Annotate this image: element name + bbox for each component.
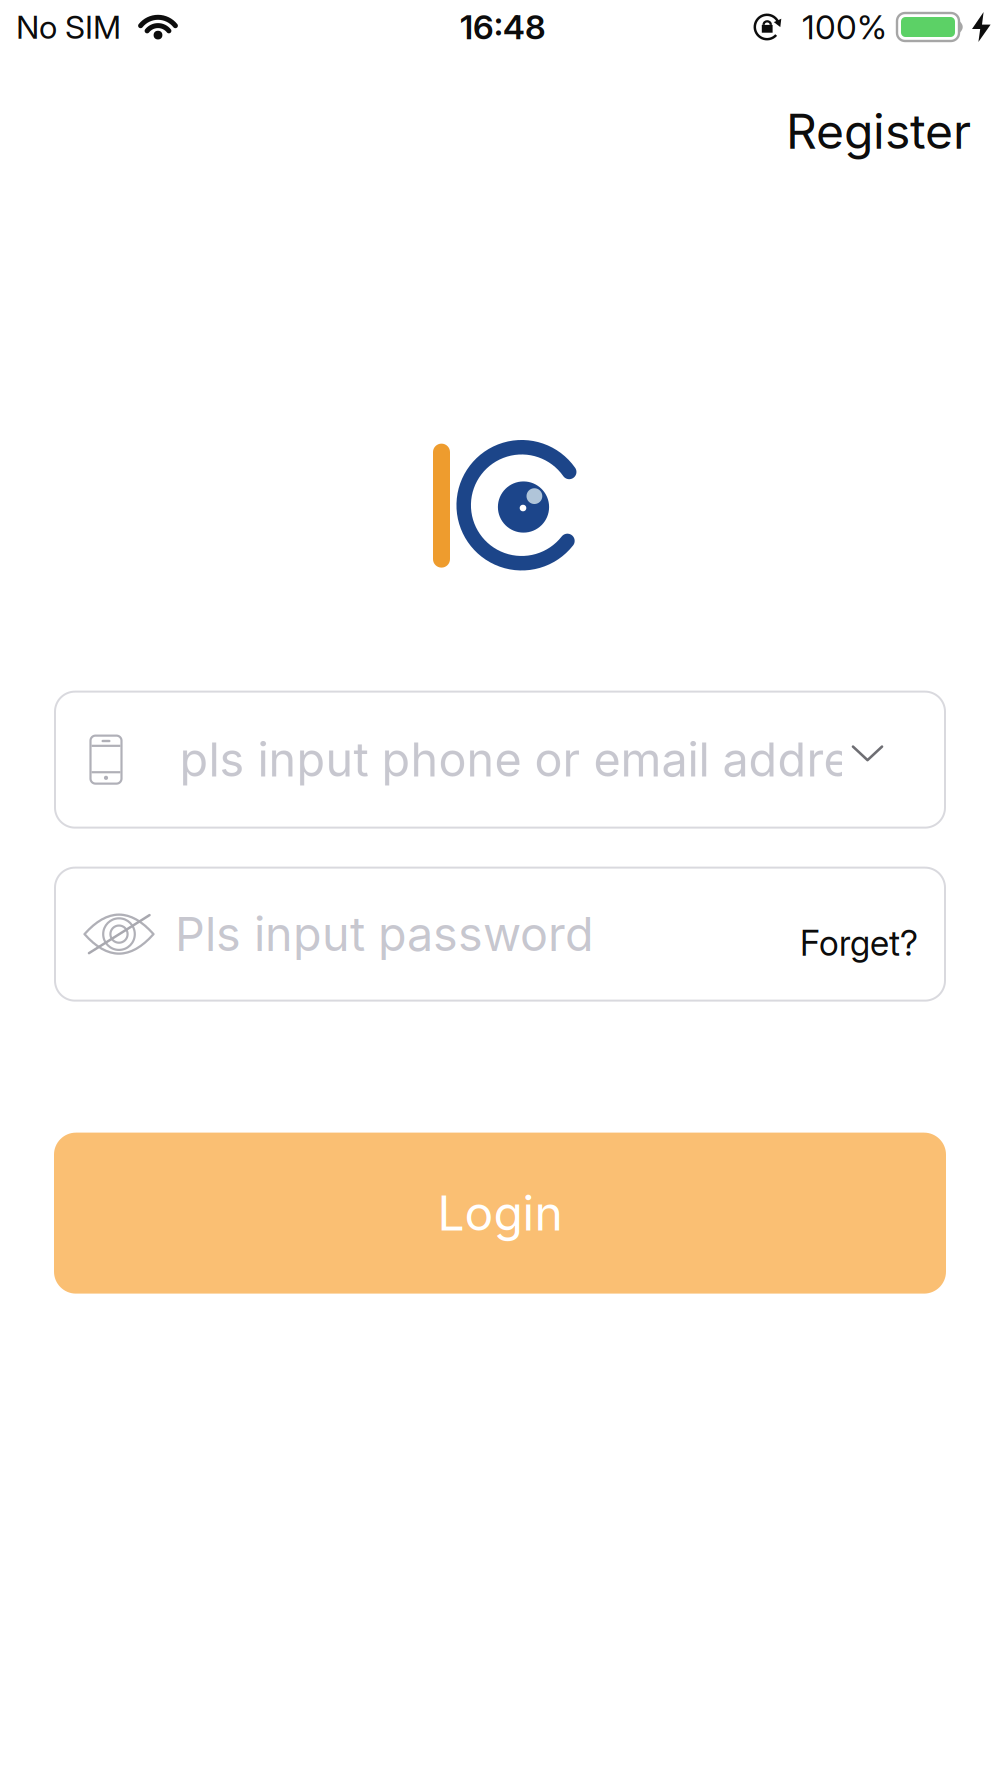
button[interactable]: Forget?	[800, 914, 918, 955]
staticText: Pls input password	[175, 907, 594, 962]
staticText: pls input phone or email address	[179, 732, 900, 787]
staticText: 16:48	[460, 7, 546, 47]
staticText: Forget?	[800, 923, 918, 964]
staticText: No SIM	[16, 8, 121, 46]
button[interactable]: Show password	[84, 912, 154, 956]
staticText: Login	[437, 1185, 562, 1241]
button[interactable]: Register	[786, 103, 971, 160]
button[interactable]: Login	[54, 1133, 946, 1294]
button[interactable]: Select account type	[841, 725, 893, 782]
staticText: Register	[786, 103, 971, 160]
staticText: 100%	[802, 7, 887, 47]
